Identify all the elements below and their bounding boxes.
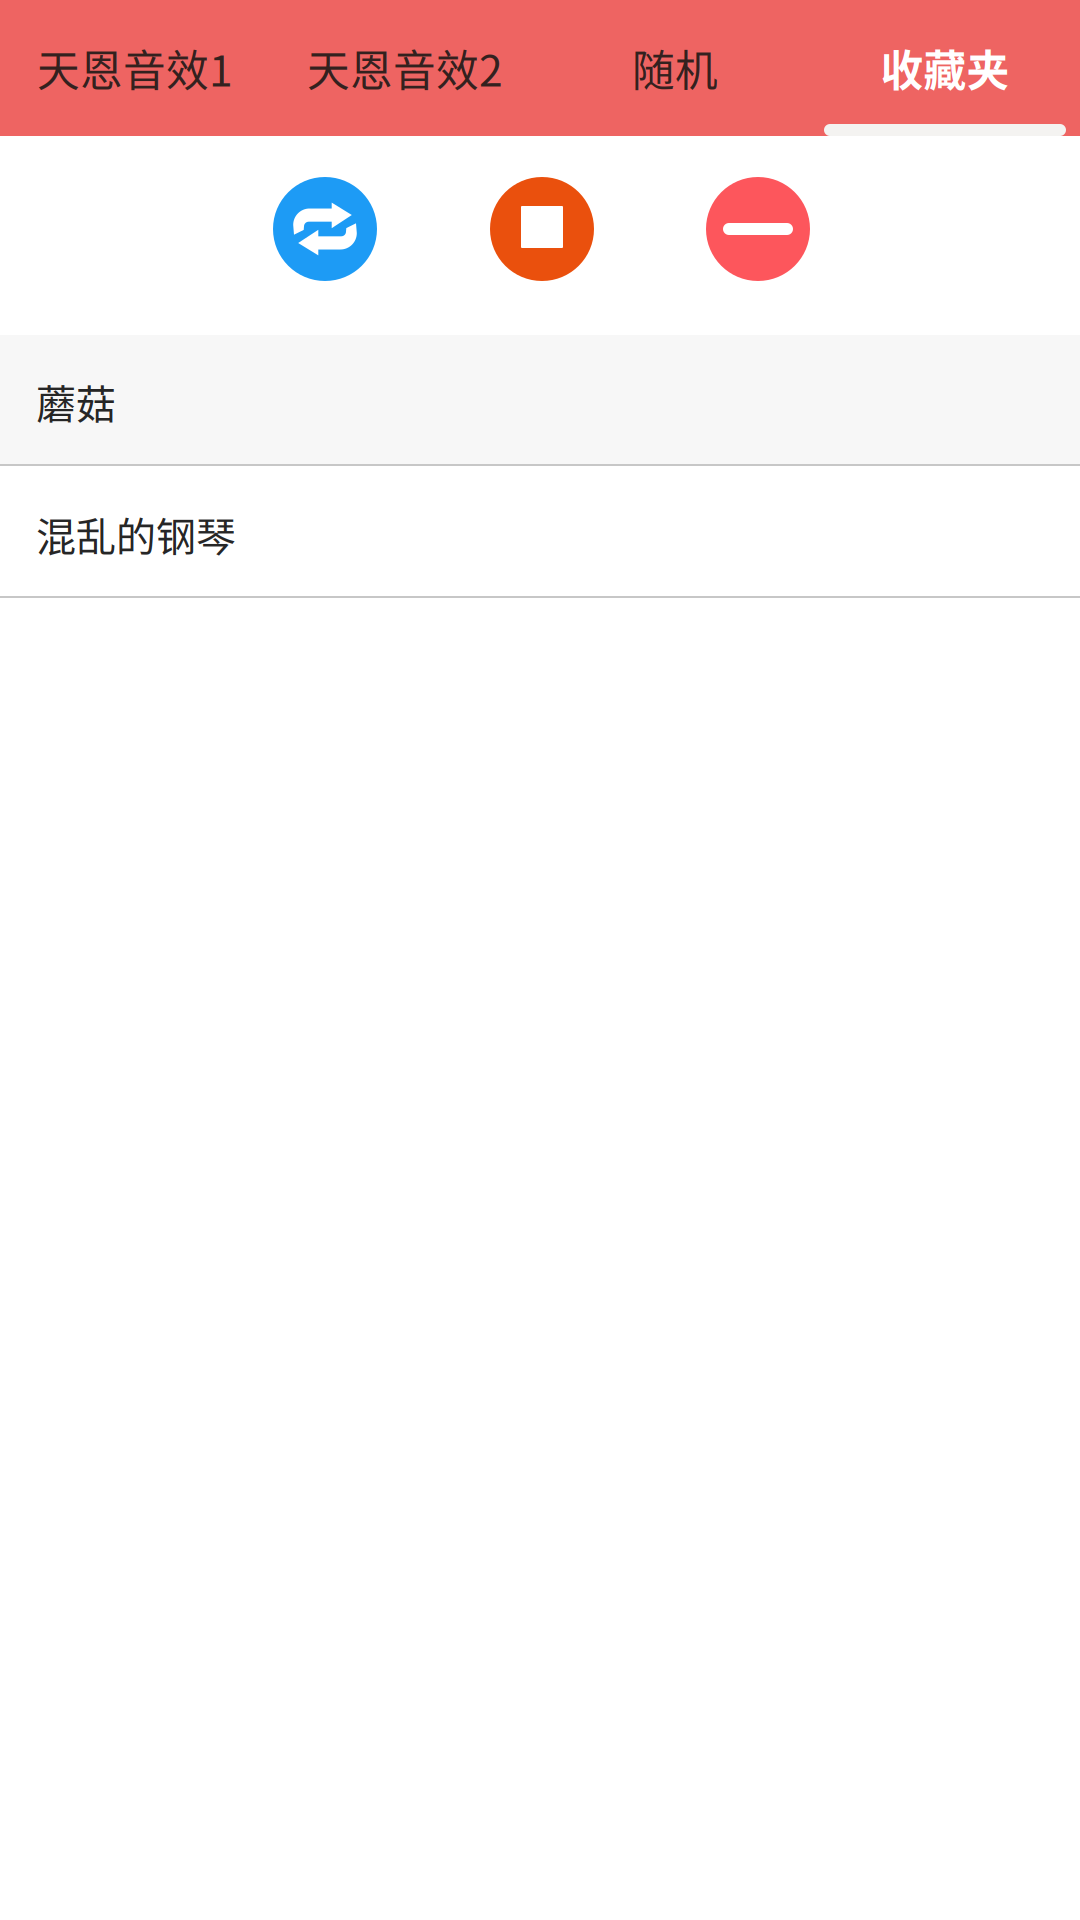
staticText: 混乱的钢琴: [36, 505, 236, 563]
button[interactable]: 天恩音效1: [0, 0, 270, 136]
staticText: 收藏夹: [880, 37, 1009, 99]
button[interactable]: 随机: [540, 0, 810, 136]
staticText: 天恩音效1: [37, 37, 233, 99]
button[interactable]: Repeat: [273, 177, 377, 281]
button[interactable]: 混乱的钢琴: [0, 466, 1080, 598]
button[interactable]: Stop: [490, 177, 594, 281]
button[interactable]: Remove: [706, 177, 810, 281]
button[interactable]: 收藏夹: [810, 0, 1080, 136]
staticText: 随机: [632, 37, 718, 99]
button[interactable]: 蘑菇: [0, 335, 1080, 466]
button[interactable]: 天恩音效2: [270, 0, 540, 136]
staticText: 蘑菇: [36, 372, 116, 430]
staticText: 天恩音效2: [307, 37, 503, 99]
